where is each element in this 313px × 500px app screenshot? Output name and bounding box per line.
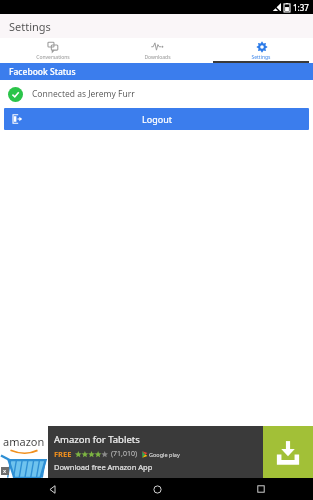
button[interactable]: Connected as Jeremy Furr xyxy=(0,80,313,108)
button[interactable]: Conversations xyxy=(0,38,105,63)
staticText: 1:37 xyxy=(293,2,309,13)
staticText: Settings xyxy=(9,19,51,34)
staticText: Facebook Status xyxy=(9,66,76,78)
staticText: Connected as Jeremy Furr xyxy=(32,88,135,100)
staticText: Download free Amazon App xyxy=(54,462,153,472)
button[interactable]: Downloads xyxy=(105,38,209,63)
staticText: (71,010) xyxy=(111,449,138,459)
staticText: Settings xyxy=(251,54,271,61)
button[interactable]: Close ad xyxy=(1,467,9,475)
staticText: Downloads xyxy=(144,54,171,61)
staticText: Google play xyxy=(149,451,180,458)
button[interactable]: Recents xyxy=(209,478,313,500)
staticText: amazon xyxy=(3,434,45,449)
staticText: FREE xyxy=(54,449,72,459)
button[interactable]: Home xyxy=(105,478,209,500)
button[interactable]: Download xyxy=(263,426,313,478)
button[interactable]: Back xyxy=(0,478,105,500)
button[interactable]: amazon xyxy=(0,426,313,478)
staticText: Logout xyxy=(142,113,172,125)
staticText: Conversations xyxy=(36,54,70,61)
button[interactable]: Settings xyxy=(209,38,313,63)
staticText: x xyxy=(3,467,7,475)
staticText: Amazon for Tablets xyxy=(54,433,140,446)
button[interactable]: Logout xyxy=(4,108,309,130)
